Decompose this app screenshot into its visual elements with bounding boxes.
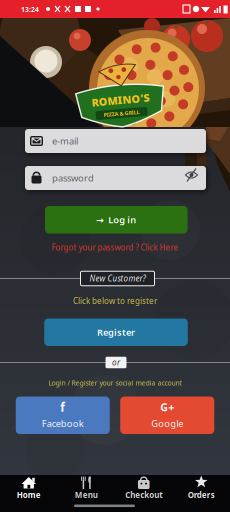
staticText: G+: [160, 400, 174, 414]
staticText: Checkout: [125, 490, 162, 500]
staticText: Click below to register: [73, 296, 157, 306]
button[interactable]: Register: [44, 318, 188, 346]
staticText: f: [60, 399, 65, 415]
staticText: Orders: [188, 490, 215, 500]
button[interactable]: Menu: [0, 0, 230, 512]
button[interactable]: [0, 0, 230, 512]
button[interactable]: Forgot your password ? Click Here: [51, 242, 178, 253]
staticText: Home: [17, 490, 41, 500]
button[interactable]: Checkout: [0, 0, 230, 512]
button[interactable]: Orders: [0, 0, 230, 512]
button[interactable]: Home: [0, 0, 230, 512]
staticText: ROMINO'S: [91, 93, 149, 107]
button[interactable]: f: [16, 396, 110, 434]
staticText: Forgot your password ? Click Here: [51, 242, 178, 253]
button[interactable]: → Log in: [45, 206, 187, 233]
staticText: Login / Register your social media accou…: [48, 379, 181, 387]
staticText: e-mail: [52, 135, 78, 147]
staticText: New Customer?: [89, 273, 145, 284]
staticText: or: [112, 357, 120, 368]
staticText: Facebook: [42, 417, 84, 430]
staticText: password: [52, 172, 94, 184]
staticText: Register: [97, 326, 135, 338]
button[interactable]: G+: [120, 396, 214, 434]
staticText: → Log in: [96, 214, 136, 226]
staticText: 13:24: [21, 5, 39, 14]
staticText: Menu: [75, 490, 98, 500]
staticText: Google: [151, 417, 183, 430]
staticText: PIZZA & GRILL: [102, 110, 138, 117]
